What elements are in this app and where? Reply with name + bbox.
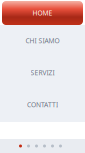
staticText: CONTATTI [27,100,58,109]
staticText: HOME [32,8,52,18]
staticText: CHI SIAMO [25,36,59,45]
staticText: SERVIZI [30,68,54,77]
